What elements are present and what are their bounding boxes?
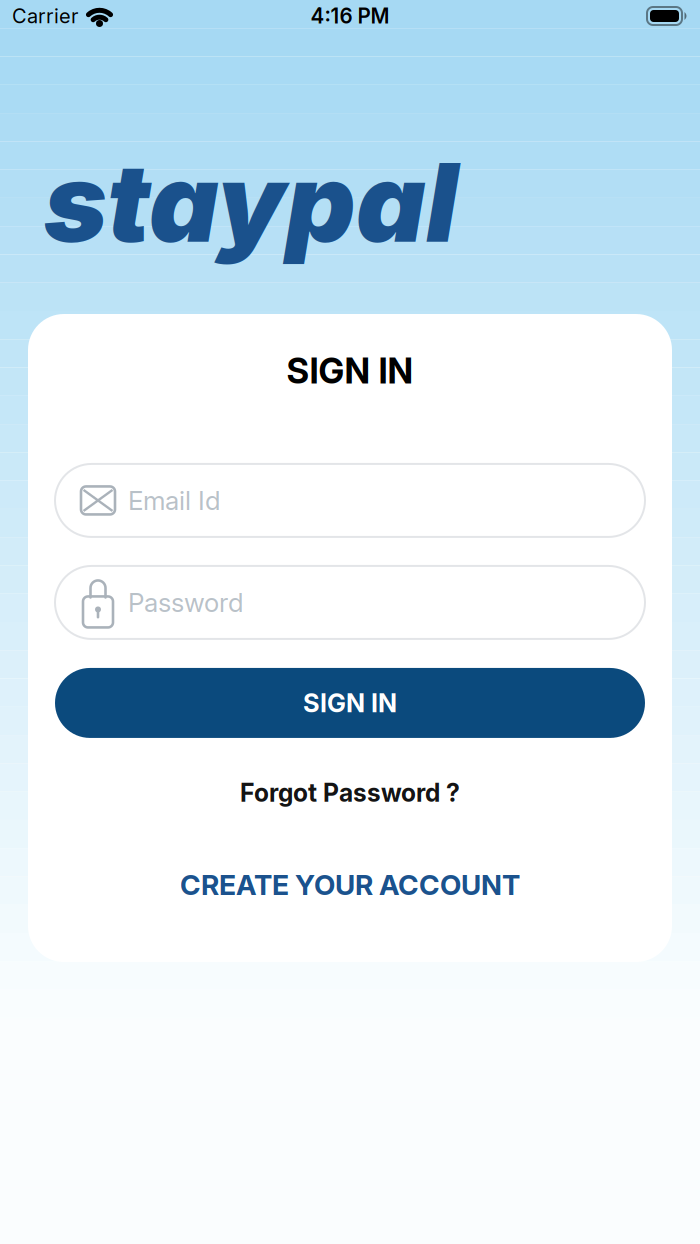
staticText: 4:16 PM bbox=[310, 3, 389, 28]
button[interactable]: SIGN IN bbox=[55, 668, 645, 738]
staticText: Password bbox=[128, 587, 244, 618]
staticText: Carrier bbox=[12, 4, 78, 28]
staticText: Email Id bbox=[128, 485, 221, 516]
button[interactable]: Password bbox=[55, 566, 645, 639]
button[interactable]: Forgot Password ? bbox=[240, 778, 460, 808]
button[interactable]: Email Id bbox=[55, 464, 645, 537]
staticText: SIGN IN bbox=[303, 688, 397, 718]
button[interactable]: CREATE YOUR ACCOUNT bbox=[180, 868, 520, 902]
staticText: staypal bbox=[44, 137, 458, 268]
staticText: Forgot Password ? bbox=[240, 778, 460, 808]
staticText: SIGN IN bbox=[286, 350, 413, 392]
staticText: CREATE YOUR ACCOUNT bbox=[180, 868, 520, 902]
